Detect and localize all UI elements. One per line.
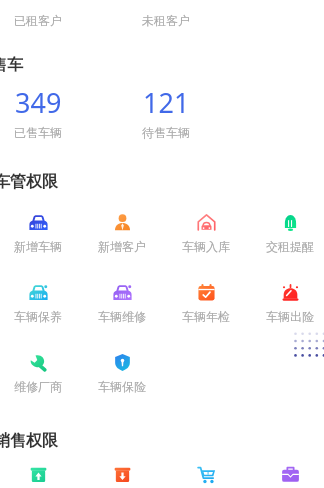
staticText: 车辆维修 bbox=[98, 309, 146, 324]
staticText: 新增客户 bbox=[98, 239, 146, 254]
staticText: 121 bbox=[143, 84, 190, 121]
staticText: 维修厂商 bbox=[14, 379, 62, 394]
staticText: 车辆保养 bbox=[14, 309, 62, 324]
button[interactable]: 车辆保养 bbox=[0, 275, 80, 325]
staticText: 车管权限 bbox=[0, 172, 58, 192]
button[interactable]: 车辆维修 bbox=[80, 275, 164, 325]
staticText: 售车 bbox=[0, 55, 23, 75]
button[interactable]: 交租提醒 bbox=[248, 205, 324, 255]
button[interactable]: 销售管理 bbox=[248, 457, 324, 488]
button[interactable]: 车辆上架 bbox=[0, 457, 80, 488]
staticText: 新增车辆 bbox=[14, 239, 62, 254]
button[interactable]: 车辆入库 bbox=[164, 205, 248, 255]
staticText: 车辆年检 bbox=[182, 309, 230, 324]
button[interactable]: 349 bbox=[0, 84, 100, 140]
staticText: 待售车辆 bbox=[142, 125, 190, 140]
staticText: 已租客户 bbox=[14, 13, 62, 28]
button[interactable]: 车辆年检 bbox=[164, 275, 248, 325]
other: Decoration bbox=[0, 0, 324, 488]
button[interactable]: 销售订单 bbox=[164, 457, 248, 488]
button[interactable]: 新增车辆 bbox=[0, 205, 80, 255]
staticText: 已售车辆 bbox=[14, 125, 62, 140]
button[interactable]: 车辆保险 bbox=[80, 345, 164, 395]
button[interactable]: 121 bbox=[104, 84, 228, 140]
staticText: 交租提醒 bbox=[266, 239, 314, 254]
staticText: 车辆出险 bbox=[266, 309, 314, 324]
staticText: 未租客户 bbox=[142, 13, 190, 28]
staticText: 349 bbox=[15, 84, 62, 121]
staticText: 车辆保险 bbox=[98, 379, 146, 394]
staticText: 车辆入库 bbox=[182, 239, 230, 254]
button[interactable]: 车辆出险 bbox=[248, 275, 324, 325]
button[interactable]: 车辆下架 bbox=[80, 457, 164, 488]
button[interactable]: 新增客户 bbox=[80, 205, 164, 255]
staticText: 销售权限 bbox=[0, 431, 58, 451]
button[interactable]: 维修厂商 bbox=[0, 345, 80, 395]
